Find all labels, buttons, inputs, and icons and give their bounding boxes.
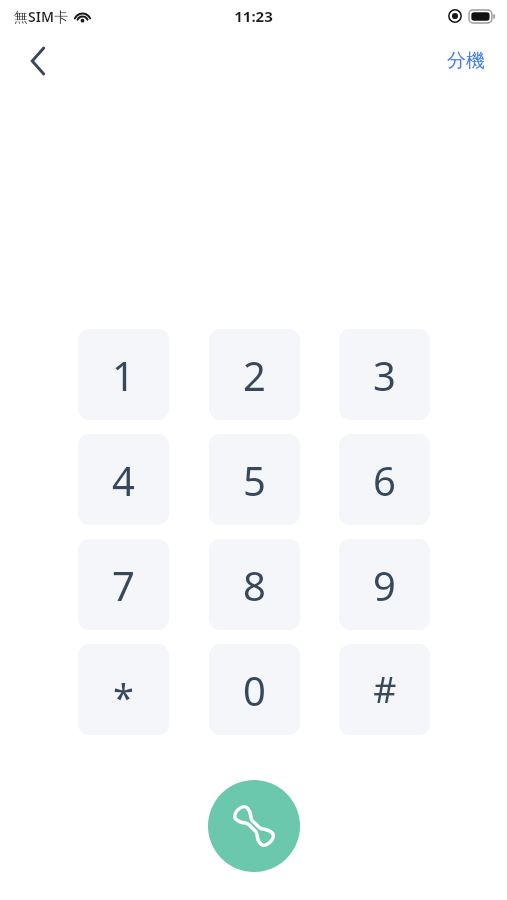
button[interactable]: 3	[339, 329, 430, 420]
staticText: 2	[243, 348, 266, 402]
button[interactable]: 8	[209, 539, 300, 630]
button[interactable]: 5	[209, 434, 300, 525]
button[interactable]: 9	[339, 539, 430, 630]
button[interactable]: 分機	[443, 43, 489, 79]
staticText: 0	[243, 663, 266, 717]
button[interactable]: 7	[78, 539, 169, 630]
staticText: 分機	[447, 49, 485, 73]
staticText: *	[113, 671, 134, 723]
staticText: 3	[373, 348, 396, 402]
button[interactable]: 4	[78, 434, 169, 525]
staticText: 6	[373, 453, 396, 507]
button[interactable]: 2	[209, 329, 300, 420]
staticText: 4	[112, 453, 135, 507]
staticText: 1	[112, 348, 135, 402]
button[interactable]: #	[339, 644, 430, 735]
button[interactable]: Call	[208, 780, 300, 872]
staticText: 8	[243, 558, 266, 612]
staticText: 7	[112, 558, 135, 612]
button[interactable]: 1	[78, 329, 169, 420]
staticText: #	[373, 665, 397, 714]
staticText: 11:23	[234, 6, 273, 26]
staticText: 9	[373, 558, 396, 612]
staticText: 無SIM卡	[14, 7, 68, 26]
staticText: 5	[243, 453, 266, 507]
button[interactable]: *	[78, 644, 169, 735]
button[interactable]: 0	[209, 644, 300, 735]
button[interactable]: Back	[16, 39, 60, 83]
button[interactable]: 6	[339, 434, 430, 525]
